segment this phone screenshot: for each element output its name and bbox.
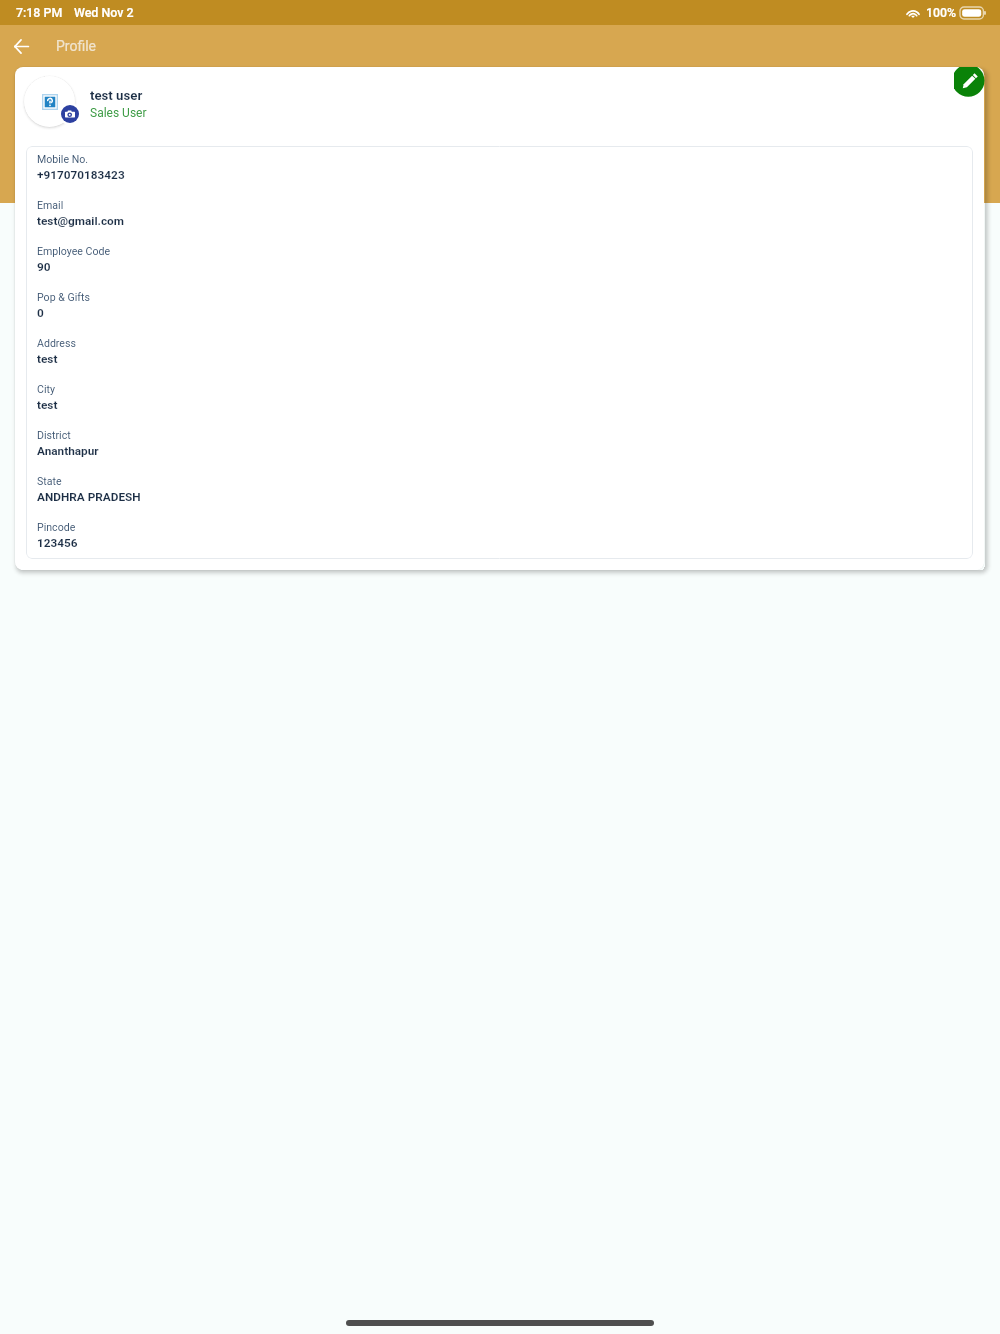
button[interactable]: Employee Code — [37, 245, 973, 291]
button[interactable]: Edit profile — [954, 67, 985, 97]
staticText: 0 — [37, 306, 44, 320]
staticText: Wed Nov 2 — [74, 5, 134, 20]
button[interactable]: District — [37, 429, 973, 475]
button[interactable]: Mobile No. — [37, 153, 973, 199]
button[interactable]: State — [37, 475, 973, 521]
button[interactable]: Profile photo — [24, 76, 75, 127]
button[interactable]: Email — [37, 199, 973, 245]
button[interactable]: Pincode — [37, 521, 973, 559]
staticText: Mobile No. — [37, 153, 89, 165]
staticText: City — [37, 383, 55, 395]
staticText: test user — [90, 88, 143, 103]
staticText: Address — [37, 337, 76, 349]
staticText: Sales User — [90, 106, 147, 120]
button[interactable]: Back — [0, 26, 42, 68]
staticText: Employee Code — [37, 245, 111, 257]
button[interactable]: Address — [37, 337, 973, 383]
staticText: 123456 — [37, 536, 78, 550]
staticText: 7:18 PM — [16, 5, 63, 20]
staticText: +917070183423 — [37, 168, 125, 182]
button[interactable]: Pop & Gifts — [37, 291, 973, 337]
staticText: Email — [37, 199, 64, 211]
staticText: ANDHRA PRADESH — [37, 490, 141, 504]
staticText: test — [37, 352, 58, 366]
staticText: State — [37, 475, 62, 487]
staticText: Pop & Gifts — [37, 291, 90, 303]
staticText: Pincode — [37, 521, 76, 533]
staticText: District — [37, 429, 71, 441]
staticText: test@gmail.com — [37, 214, 124, 228]
staticText: Profile — [56, 38, 97, 54]
staticText: Ananthapur — [37, 444, 99, 458]
button[interactable]: Change profile photo — [61, 105, 79, 123]
staticText: 100% — [926, 6, 956, 20]
staticText: 90 — [37, 260, 51, 274]
staticText: test — [37, 398, 58, 412]
button[interactable]: City — [37, 383, 973, 429]
